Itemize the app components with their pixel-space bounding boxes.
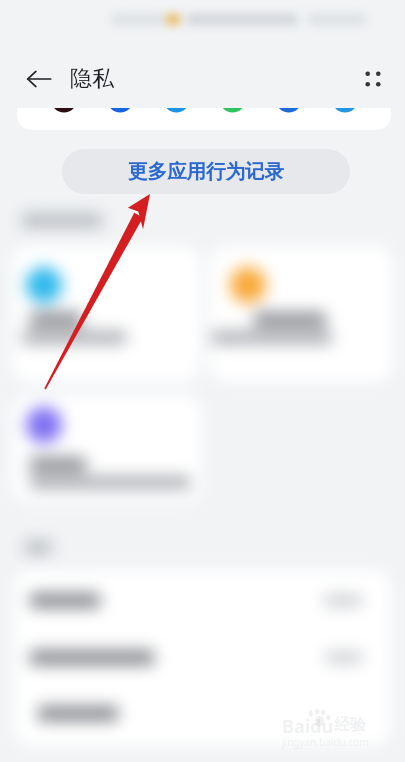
button[interactable]: [210, 246, 393, 382]
staticText: jingyan.baidu.com: [282, 735, 369, 749]
staticText: Bai: [282, 714, 311, 739]
button[interactable]: [12, 395, 202, 503]
button[interactable]: More options: [349, 55, 397, 103]
button[interactable]: [12, 246, 200, 382]
staticText: 隐私: [70, 65, 114, 93]
button[interactable]: [14, 685, 391, 741]
staticText: du: [310, 714, 334, 739]
button[interactable]: [17, 108, 391, 130]
button[interactable]: Back: [15, 55, 63, 103]
staticText: 经验: [334, 715, 366, 735]
button[interactable]: [14, 629, 391, 685]
button[interactable]: [14, 572, 391, 628]
staticText: 更多应用行为记录: [128, 159, 284, 184]
button[interactable]: 更多应用行为记录: [62, 149, 350, 194]
